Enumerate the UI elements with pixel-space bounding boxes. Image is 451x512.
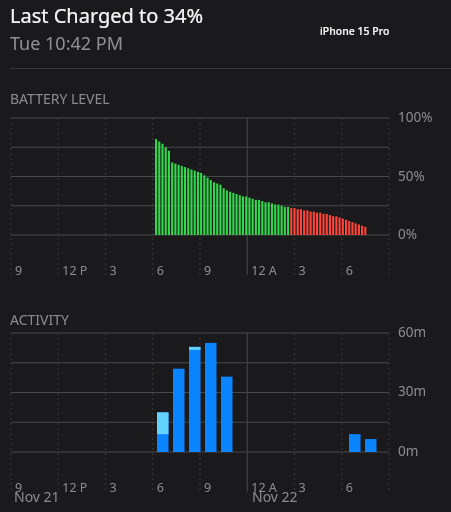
button[interactable]: Battery usage chart	[0, 0, 451, 512]
